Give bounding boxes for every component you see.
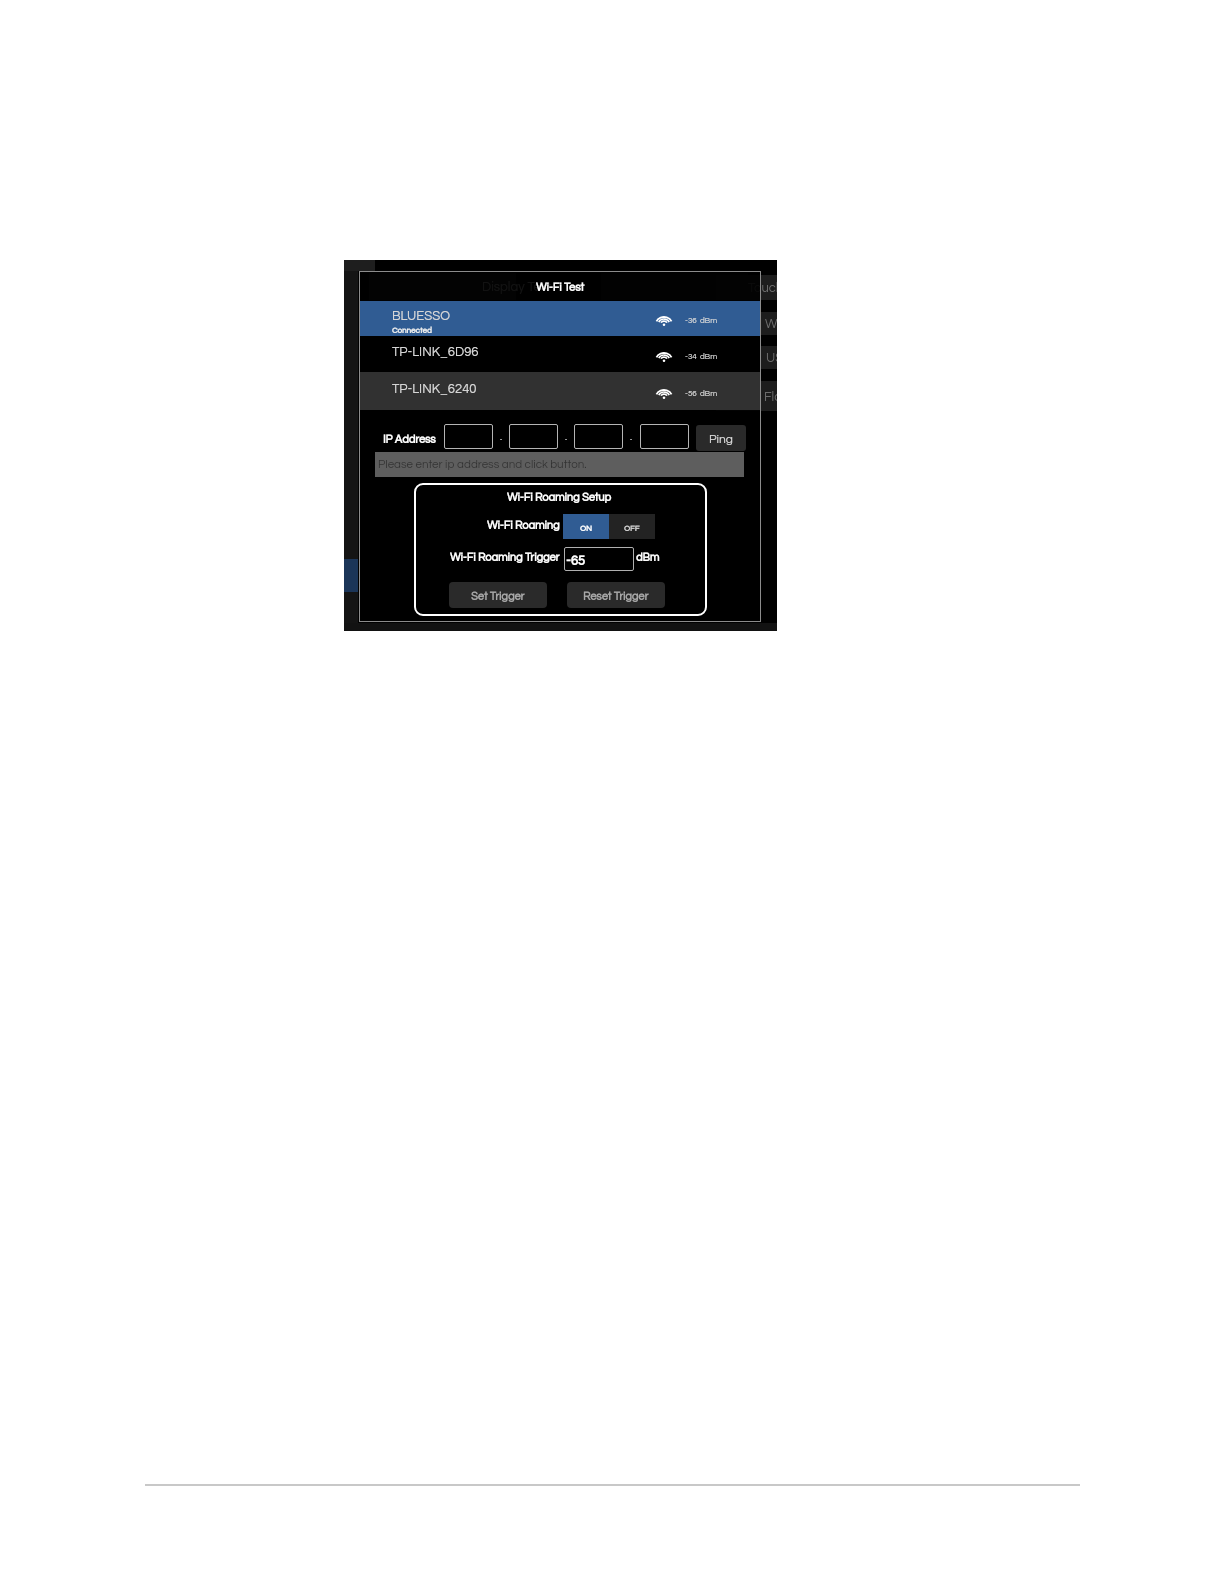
button[interactable]: IP address field bbox=[444, 424, 493, 449]
staticText: Wi-Fi Roaming bbox=[487, 520, 560, 531]
staticText: Flash bbox=[764, 390, 777, 403]
staticText: -34 dBm bbox=[685, 352, 718, 360]
button[interactable]: Roaming trigger value bbox=[564, 547, 634, 571]
button[interactable]: USB bbox=[716, 346, 777, 369]
staticText: -56 dBm bbox=[685, 389, 718, 397]
staticText: -65 bbox=[566, 554, 585, 567]
button[interactable]: Reset Trigger bbox=[567, 582, 665, 608]
staticText: . bbox=[565, 432, 568, 442]
staticText: -36 dBm bbox=[685, 316, 718, 324]
button[interactable]: IP address field bbox=[574, 424, 623, 449]
button[interactable]: Ping bbox=[696, 425, 746, 451]
staticText: TP-LINK_6D96 bbox=[392, 345, 479, 358]
button[interactable]: TP-LINK_6D96 bbox=[359, 336, 761, 372]
staticText: Connected bbox=[392, 326, 432, 334]
staticText: Wi-Fi Roaming Setup bbox=[507, 492, 612, 503]
staticText: TP-LINK_6240 bbox=[392, 382, 477, 395]
staticText: OFF bbox=[624, 524, 640, 532]
button[interactable]: IP address field bbox=[509, 424, 558, 449]
button[interactable]: IP address field bbox=[640, 424, 689, 449]
other: Signal strength bbox=[656, 350, 672, 362]
staticText: Wi-Fi Test bbox=[536, 282, 585, 293]
staticText: IP Address bbox=[383, 434, 436, 445]
button[interactable]: Set Trigger bbox=[449, 582, 547, 608]
staticText: BLUESSO bbox=[392, 309, 450, 322]
button[interactable]: TP-LINK_6240 bbox=[359, 372, 761, 410]
other: Signal strength bbox=[656, 387, 672, 399]
staticText: Ping bbox=[709, 433, 733, 445]
button[interactable]: Flash bbox=[716, 381, 777, 411]
button[interactable]: BLUESSO bbox=[359, 301, 761, 336]
button[interactable]: ON bbox=[563, 514, 609, 539]
staticText: . bbox=[630, 432, 633, 442]
staticText: Set Trigger bbox=[471, 591, 525, 602]
staticText: . bbox=[500, 432, 503, 442]
button[interactable]: Touch bbox=[716, 275, 777, 300]
staticText: Wi-Fi Roaming Trigger bbox=[450, 552, 560, 563]
button[interactable]: Wi-Fi bbox=[716, 312, 777, 335]
staticText: Display Test bbox=[482, 280, 552, 293]
other: Signal strength bbox=[656, 314, 672, 326]
button[interactable]: OFF bbox=[609, 514, 655, 539]
staticText: ON bbox=[580, 524, 592, 532]
staticText: dBm bbox=[636, 552, 660, 563]
staticText: Please enter ip address and click button… bbox=[378, 458, 587, 470]
staticText: USB bbox=[766, 351, 777, 364]
staticText: Reset Trigger bbox=[583, 591, 649, 602]
staticText: Wi-Fi bbox=[765, 317, 777, 330]
staticText: Touch bbox=[748, 281, 777, 294]
